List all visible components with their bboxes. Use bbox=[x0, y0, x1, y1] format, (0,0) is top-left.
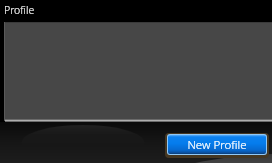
button[interactable]: New Profile bbox=[165, 133, 269, 158]
staticText: New Profile bbox=[187, 137, 247, 153]
staticText: Profile bbox=[4, 3, 35, 17]
